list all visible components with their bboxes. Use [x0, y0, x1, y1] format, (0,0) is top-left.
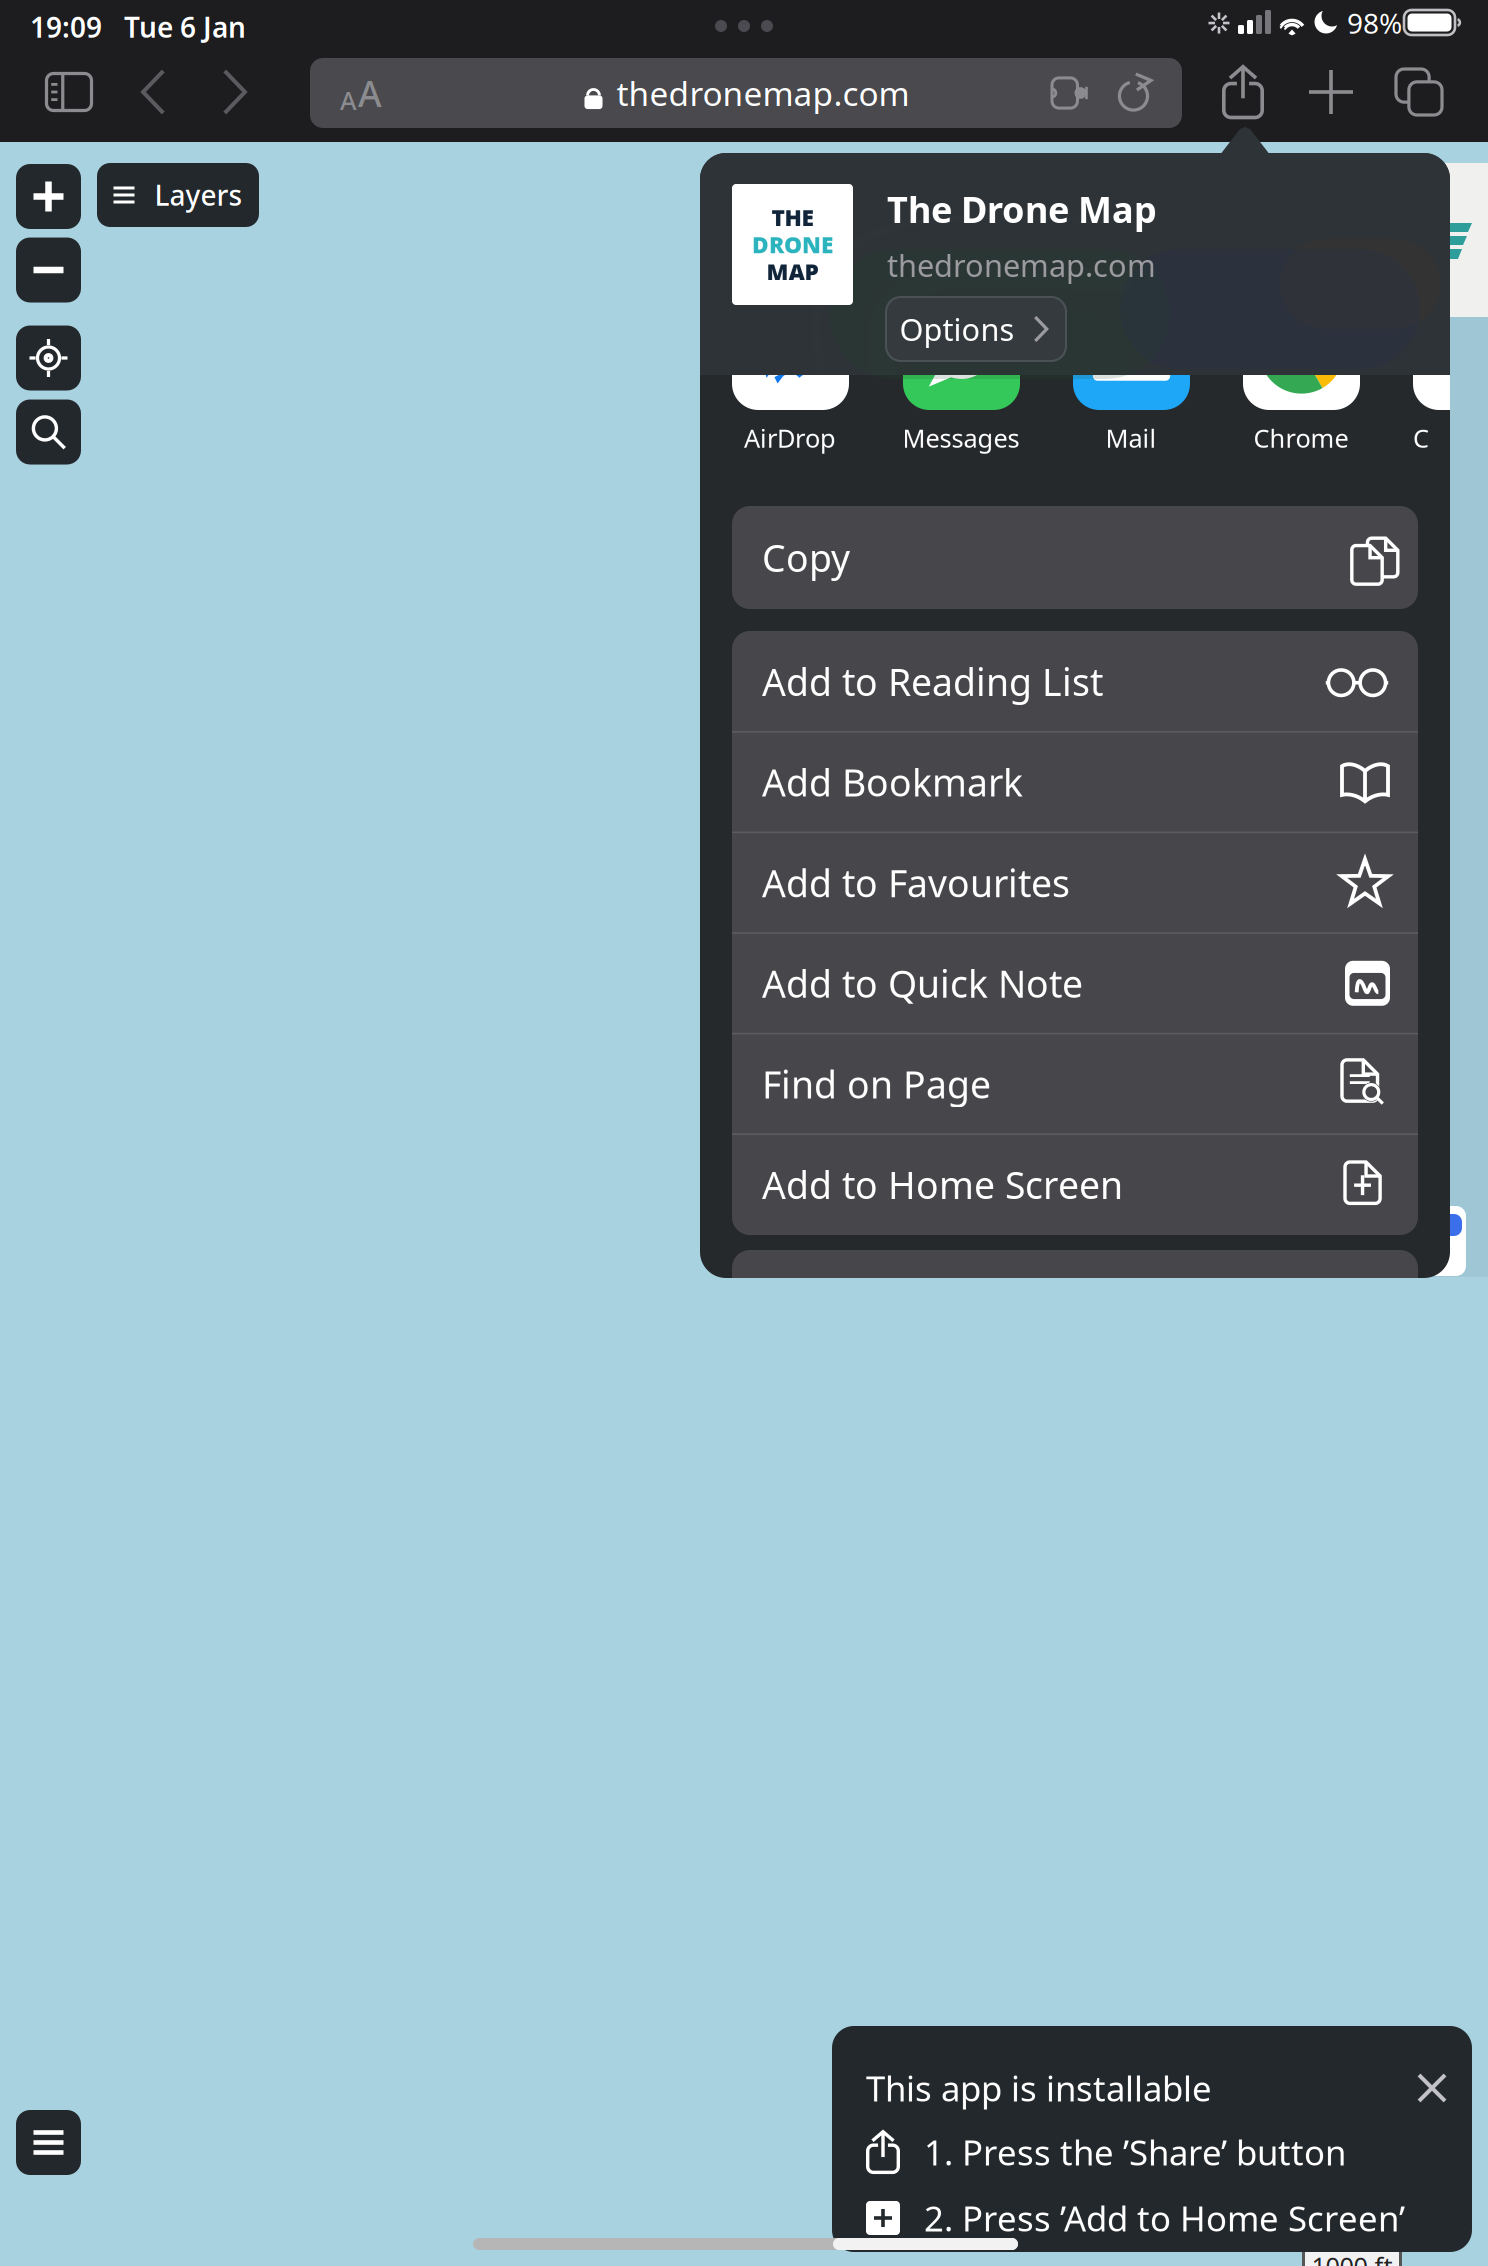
button[interactable]: Zoom Out: [16, 237, 81, 302]
staticText: Copy: [762, 533, 850, 582]
staticText: The Drone Map: [887, 185, 1157, 233]
button[interactable]: Layers: [97, 163, 259, 227]
button[interactable]: Zoom In: [16, 164, 81, 229]
button[interactable]: Messages: [903, 293, 1020, 410]
staticText: Layers: [154, 176, 242, 214]
staticText: Chrome: [1253, 421, 1348, 455]
staticText: Add to Home Screen: [762, 1160, 1123, 1209]
button[interactable]: Search: [16, 399, 81, 464]
button[interactable]: Chrome: [1243, 293, 1360, 410]
staticText: thedronemap.com: [887, 245, 1156, 285]
staticText: This app is installable: [866, 2065, 1212, 2111]
button[interactable]: Mail: [1073, 293, 1190, 410]
staticText: THE: [771, 202, 813, 232]
staticText: thedronemap.com: [616, 71, 909, 115]
button[interactable]: Add to Reading List: [732, 632, 1418, 731]
button[interactable]: Show Tabs: [1396, 69, 1442, 115]
button[interactable]: Forward: [213, 71, 255, 113]
button[interactable]: Add to Home Screen: [732, 1135, 1418, 1234]
staticText: Messages: [902, 421, 1019, 455]
staticText: 1000 ft: [1311, 2249, 1392, 2266]
button[interactable]: Menu: [16, 2110, 81, 2175]
button[interactable]: Find on Page: [732, 1034, 1418, 1133]
staticText: DRONE: [752, 229, 833, 259]
button[interactable]: Close: [1417, 2073, 1447, 2103]
staticText: 2. Press ’Add to Home Screen’: [924, 2195, 1405, 2241]
staticText: A: [340, 83, 357, 117]
staticText: 98%: [1347, 4, 1402, 42]
button[interactable]: AirDrop: [732, 293, 849, 410]
staticText: MAP: [766, 257, 818, 287]
staticText: Options: [899, 309, 1014, 349]
button[interactable]: New Tab: [1309, 70, 1353, 114]
staticText: Add to Favourites: [762, 858, 1070, 907]
staticText: Add to Reading List: [762, 657, 1103, 706]
button[interactable]: Share: [1222, 65, 1264, 119]
button[interactable]: Add Bookmark: [732, 733, 1418, 832]
button[interactable]: Sidebar: [45, 72, 93, 112]
button[interactable]: Add to Quick Note: [732, 934, 1418, 1033]
button[interactable]: Add to Favourites: [732, 833, 1418, 932]
button[interactable]: A: [310, 58, 1182, 128]
staticText: Add Bookmark: [762, 757, 1023, 807]
staticText: 19:09: [30, 8, 102, 46]
staticText: A: [358, 69, 382, 117]
staticText: C: [1413, 421, 1429, 455]
button[interactable]: Locate Me: [16, 325, 81, 390]
staticText: AirDrop: [744, 421, 836, 455]
button[interactable]: Back: [133, 71, 175, 113]
staticText: Add to Quick Note: [762, 958, 1083, 1008]
staticText: 1. Press the ’Share’ button: [924, 2129, 1346, 2175]
button[interactable]: Copy: [732, 506, 1418, 609]
staticText: Find on Page: [762, 1059, 991, 1109]
staticText: Tue 6 Jan: [124, 8, 246, 46]
staticText: Mail: [1105, 421, 1156, 455]
button[interactable]: Options: [885, 296, 1067, 362]
